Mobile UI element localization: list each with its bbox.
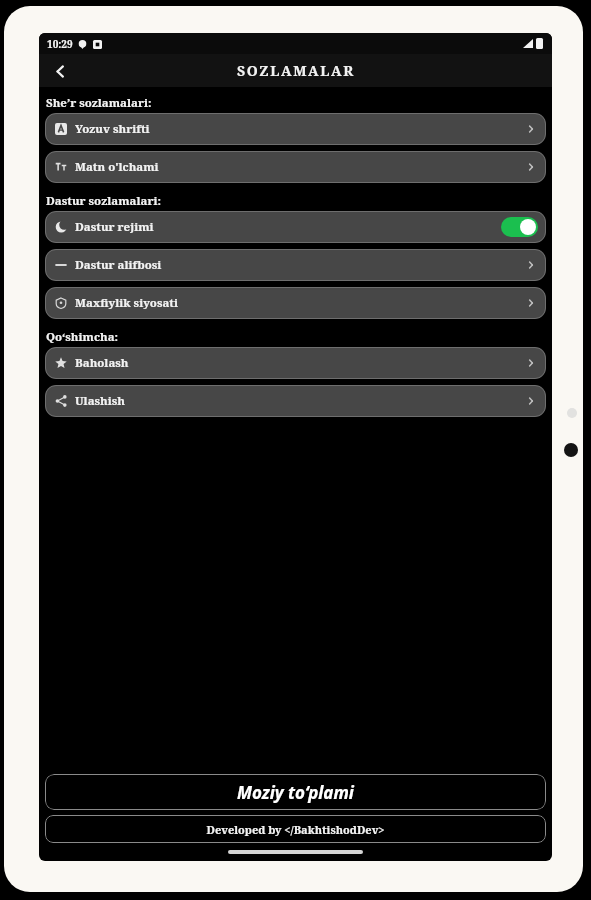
- button[interactable]: Dastur alifbosi: [45, 249, 546, 281]
- button[interactable]: Ulashish: [45, 385, 546, 417]
- staticText: Dastur sozlamalari:: [46, 193, 161, 209]
- staticText: Moziy to‘plami: [237, 781, 354, 804]
- staticText: Maxfiylik siyosati: [75, 295, 179, 311]
- staticText: Qo‘shimcha:: [46, 329, 119, 345]
- staticText: Matn o'lchami: [75, 159, 159, 175]
- staticText: Developed by </BakhtishodDev>: [206, 822, 385, 837]
- staticText: Dastur rejimi: [75, 219, 154, 235]
- staticText: SOZLAMALAR: [237, 61, 355, 80]
- button[interactable]: Moziy to‘plami: [45, 774, 546, 810]
- button[interactable]: Matn o'lchami: [45, 151, 546, 183]
- staticText: Yozuv shrifti: [75, 121, 150, 137]
- button[interactable]: Baholash: [45, 347, 546, 379]
- staticText: She’r sozlamalari:: [46, 95, 152, 111]
- button[interactable]: Back: [45, 56, 75, 86]
- button[interactable]: Developed by </BakhtishodDev>: [45, 815, 546, 843]
- staticText: 10:29: [47, 37, 73, 51]
- staticText: Ulashish: [75, 393, 125, 409]
- staticText: Dastur alifbosi: [75, 257, 162, 273]
- button[interactable]: Maxfiylik siyosati: [45, 287, 546, 319]
- button[interactable]: Dark mode toggle: [501, 217, 538, 237]
- button[interactable]: Yozuv shrifti: [45, 113, 546, 145]
- staticText: Baholash: [75, 355, 129, 371]
- button[interactable]: Dastur rejimi: [45, 211, 546, 243]
